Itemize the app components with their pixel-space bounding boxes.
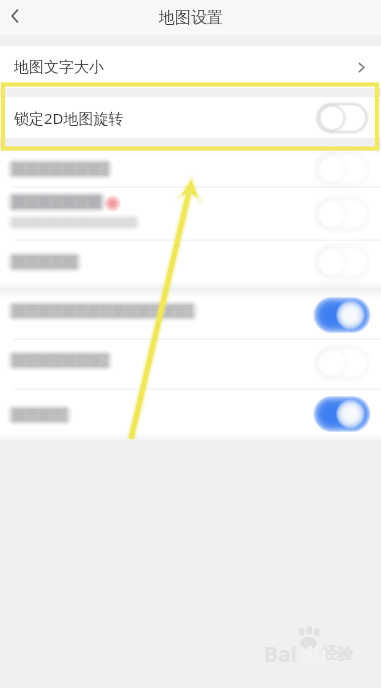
button[interactable]: 地图文字大小 xyxy=(0,46,381,88)
button[interactable]: Toggle off xyxy=(319,105,365,131)
staticText: Bai xyxy=(264,640,297,669)
staticText: 锁定2D地图旋转 xyxy=(14,108,124,128)
button[interactable]: 锁定2D地图旋转 xyxy=(0,97,381,138)
staticText: du xyxy=(300,640,327,669)
staticText: 经验 xyxy=(321,644,353,664)
button[interactable]: Toggle on xyxy=(319,302,365,328)
button[interactable]: Toggle on xyxy=(319,401,365,427)
button[interactable]: Back xyxy=(0,1,30,31)
staticText: 地图文字大小 xyxy=(14,58,104,77)
staticText: 地图设置 xyxy=(159,8,223,28)
